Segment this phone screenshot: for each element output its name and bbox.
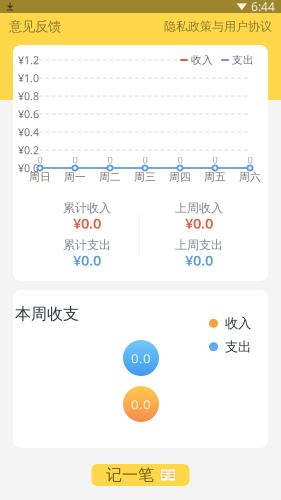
staticText: 周一	[64, 170, 86, 183]
staticText: ¥0.4	[18, 125, 39, 139]
staticText: ¥0.2	[18, 143, 39, 157]
staticText: ¥0.8	[18, 89, 39, 103]
staticText: 支出	[232, 53, 254, 66]
staticText: 周三	[134, 170, 156, 183]
staticText: 0	[247, 154, 252, 166]
staticText: 周二	[99, 170, 121, 183]
staticText: 0	[177, 154, 182, 166]
staticText: ¥0.6	[18, 107, 39, 121]
staticText: 累计收入	[63, 201, 111, 215]
staticText: 累计支出	[63, 238, 111, 252]
staticText: 周六	[239, 170, 261, 183]
staticText: 上周支出	[175, 238, 223, 252]
staticText: 记一笔	[106, 465, 154, 485]
staticText: 收入	[191, 53, 213, 66]
staticText: 6:44	[251, 0, 275, 14]
staticText: 收入	[225, 315, 251, 331]
staticText: 本周收支	[15, 304, 79, 324]
staticText: 支出	[225, 338, 251, 355]
staticText: ¥1.2	[18, 53, 39, 67]
staticText: 0	[142, 154, 147, 166]
staticText: 周日	[29, 170, 51, 183]
staticText: 意见反馈	[9, 18, 61, 35]
staticText: ¥0.0	[185, 250, 213, 270]
staticText: 周四	[169, 170, 191, 183]
button[interactable]: 记一笔	[91, 464, 189, 486]
staticText: ¥0.0	[73, 250, 101, 270]
staticText: 隐私政策与用户协议	[164, 19, 272, 34]
staticText: 0	[72, 154, 77, 166]
staticText: ¥0.0	[185, 213, 213, 233]
staticText: 周五	[204, 170, 226, 183]
staticText: ¥1.0	[18, 71, 39, 85]
button[interactable]: 意见反馈	[0, 11, 68, 42]
staticText: 0	[107, 154, 112, 166]
staticText: 0.0	[131, 349, 151, 367]
staticText: ¥0.0	[73, 213, 101, 233]
staticText: 0.0	[131, 395, 151, 413]
staticText: ¥0.0	[18, 161, 39, 175]
staticText: 0	[212, 154, 217, 166]
button[interactable]: 隐私政策与用户协议	[157, 12, 281, 41]
staticText: 0	[37, 154, 42, 166]
staticText: 上周收入	[175, 201, 223, 215]
